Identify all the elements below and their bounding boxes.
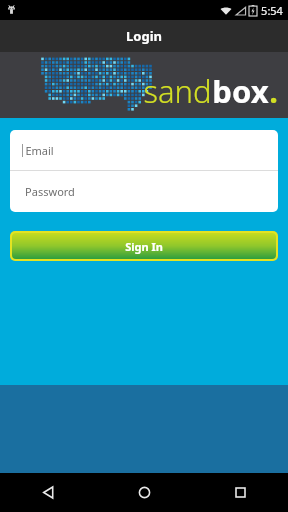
- button[interactable]: Password: [10, 171, 278, 212]
- button[interactable]: Back: [0, 473, 96, 512]
- button[interactable]: Home: [96, 473, 192, 512]
- staticText: Login: [126, 27, 162, 45]
- staticText: Sign In: [125, 239, 163, 254]
- staticText: Password: [25, 184, 75, 199]
- staticText: 5:54: [261, 3, 283, 18]
- staticText: sand: [143, 70, 212, 112]
- button[interactable]: Sign In: [12, 233, 276, 259]
- staticText: Email: [25, 143, 54, 158]
- staticText: box: [212, 70, 269, 112]
- button[interactable]: Email: [10, 130, 278, 170]
- staticText: .: [269, 70, 278, 112]
- button[interactable]: Recent apps: [192, 473, 288, 512]
